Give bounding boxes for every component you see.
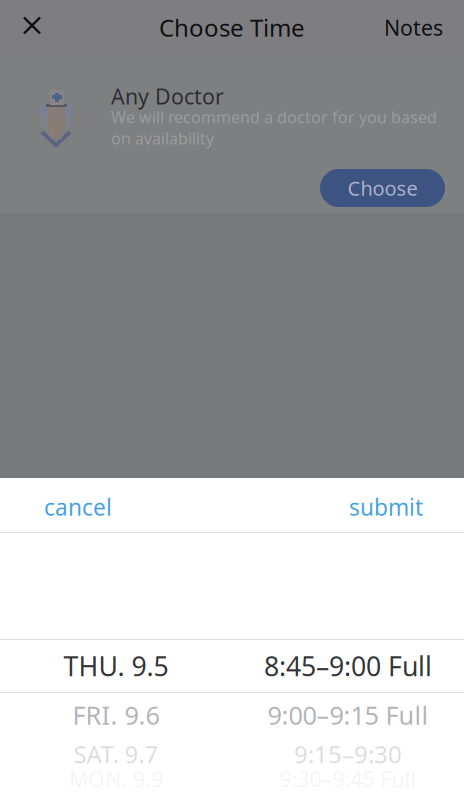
button[interactable]: 9:00–9:15 Full [232, 692, 464, 738]
button[interactable]: 8:45–9:00 Full [232, 640, 464, 692]
staticText: Any Doctor [111, 82, 224, 110]
button[interactable]: SAT. 9.7 [0, 739, 232, 769]
button[interactable]: Close [0, 0, 61, 54]
staticText: Notes [384, 13, 443, 42]
button[interactable]: cancel [0, 473, 136, 537]
staticText: SAT. 9.7 [73, 738, 158, 770]
staticText: 9:00–9:15 Full [267, 698, 428, 732]
button[interactable]: submit [325, 473, 464, 537]
button[interactable]: FRI. 9.6 [0, 692, 232, 738]
staticText: cancel [44, 492, 112, 522]
staticText: submit [349, 492, 423, 522]
staticText: THU. 9.5 [63, 648, 168, 684]
staticText: 8:45–9:00 Full [264, 648, 432, 684]
staticText: Choose [347, 175, 417, 201]
button[interactable]: Notes [364, 0, 464, 60]
staticText: 9:30–9:45 Full [279, 765, 416, 793]
staticText: We will recommend a doctor for you based… [111, 106, 437, 149]
staticText: FRI. 9.6 [72, 698, 159, 732]
button[interactable]: 9:30–9:45 Full [232, 770, 464, 788]
staticText: MON. 9.9 [69, 765, 163, 793]
button[interactable]: 9:15–9:30 [232, 739, 464, 769]
staticText: 9:15–9:30 [294, 738, 402, 770]
button[interactable]: THU. 9.5 [0, 640, 232, 692]
staticText: Choose Time [159, 12, 305, 43]
button[interactable]: Choose [320, 169, 445, 207]
